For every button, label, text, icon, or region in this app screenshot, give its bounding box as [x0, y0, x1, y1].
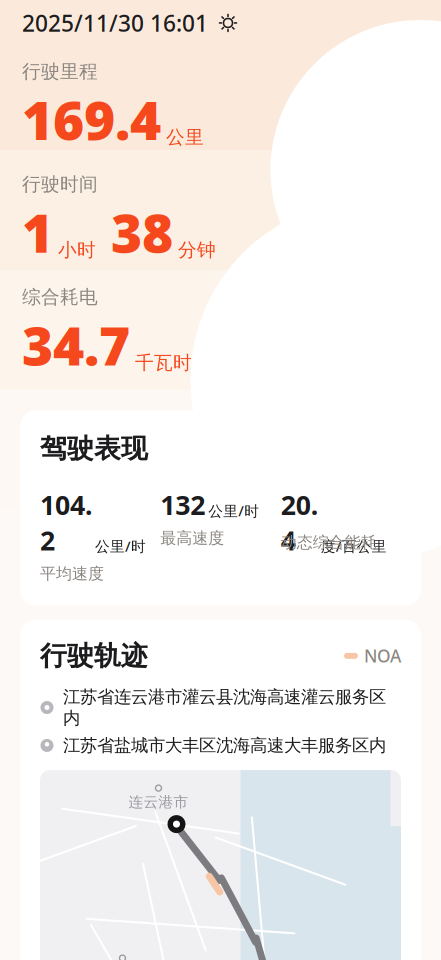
staticText: 34.7: [22, 309, 130, 380]
staticText: 169.4: [22, 84, 161, 155]
staticText: 行驶轨迹: [40, 639, 148, 672]
staticText: 千瓦时: [135, 351, 192, 374]
staticText: 度/百公里: [321, 536, 387, 556]
staticText: 连云港市: [128, 793, 188, 811]
staticText: 132: [160, 487, 205, 522]
staticText: 动态综合能耗: [281, 532, 377, 552]
staticText: 小时: [58, 239, 96, 261]
staticText: 江苏省盐城市大丰区沈海高速大丰服务区内: [63, 735, 386, 756]
staticText: 公里: [166, 126, 204, 149]
staticText: 104.2: [40, 487, 92, 558]
staticText: 分钟: [178, 239, 216, 261]
staticText: 2025/11/30 16:01: [22, 8, 208, 38]
staticText: 行驶时间: [22, 173, 98, 196]
staticText: 38: [111, 197, 173, 267]
staticText: 驾驶表现: [40, 432, 148, 465]
staticText: 平均速度: [40, 564, 104, 583]
staticText: 综合耗电: [22, 285, 98, 308]
staticText: 公里/时: [95, 536, 146, 556]
staticText: 江苏省连云港市灌云县沈海高速灌云服务区内: [63, 686, 386, 729]
staticText: NOA: [364, 644, 401, 667]
staticText: 1: [22, 197, 53, 267]
staticText: 公里/时: [208, 501, 259, 520]
staticText: 最高速度: [160, 528, 224, 548]
staticText: 20.4: [281, 487, 318, 558]
staticText: 行驶里程: [22, 60, 98, 83]
